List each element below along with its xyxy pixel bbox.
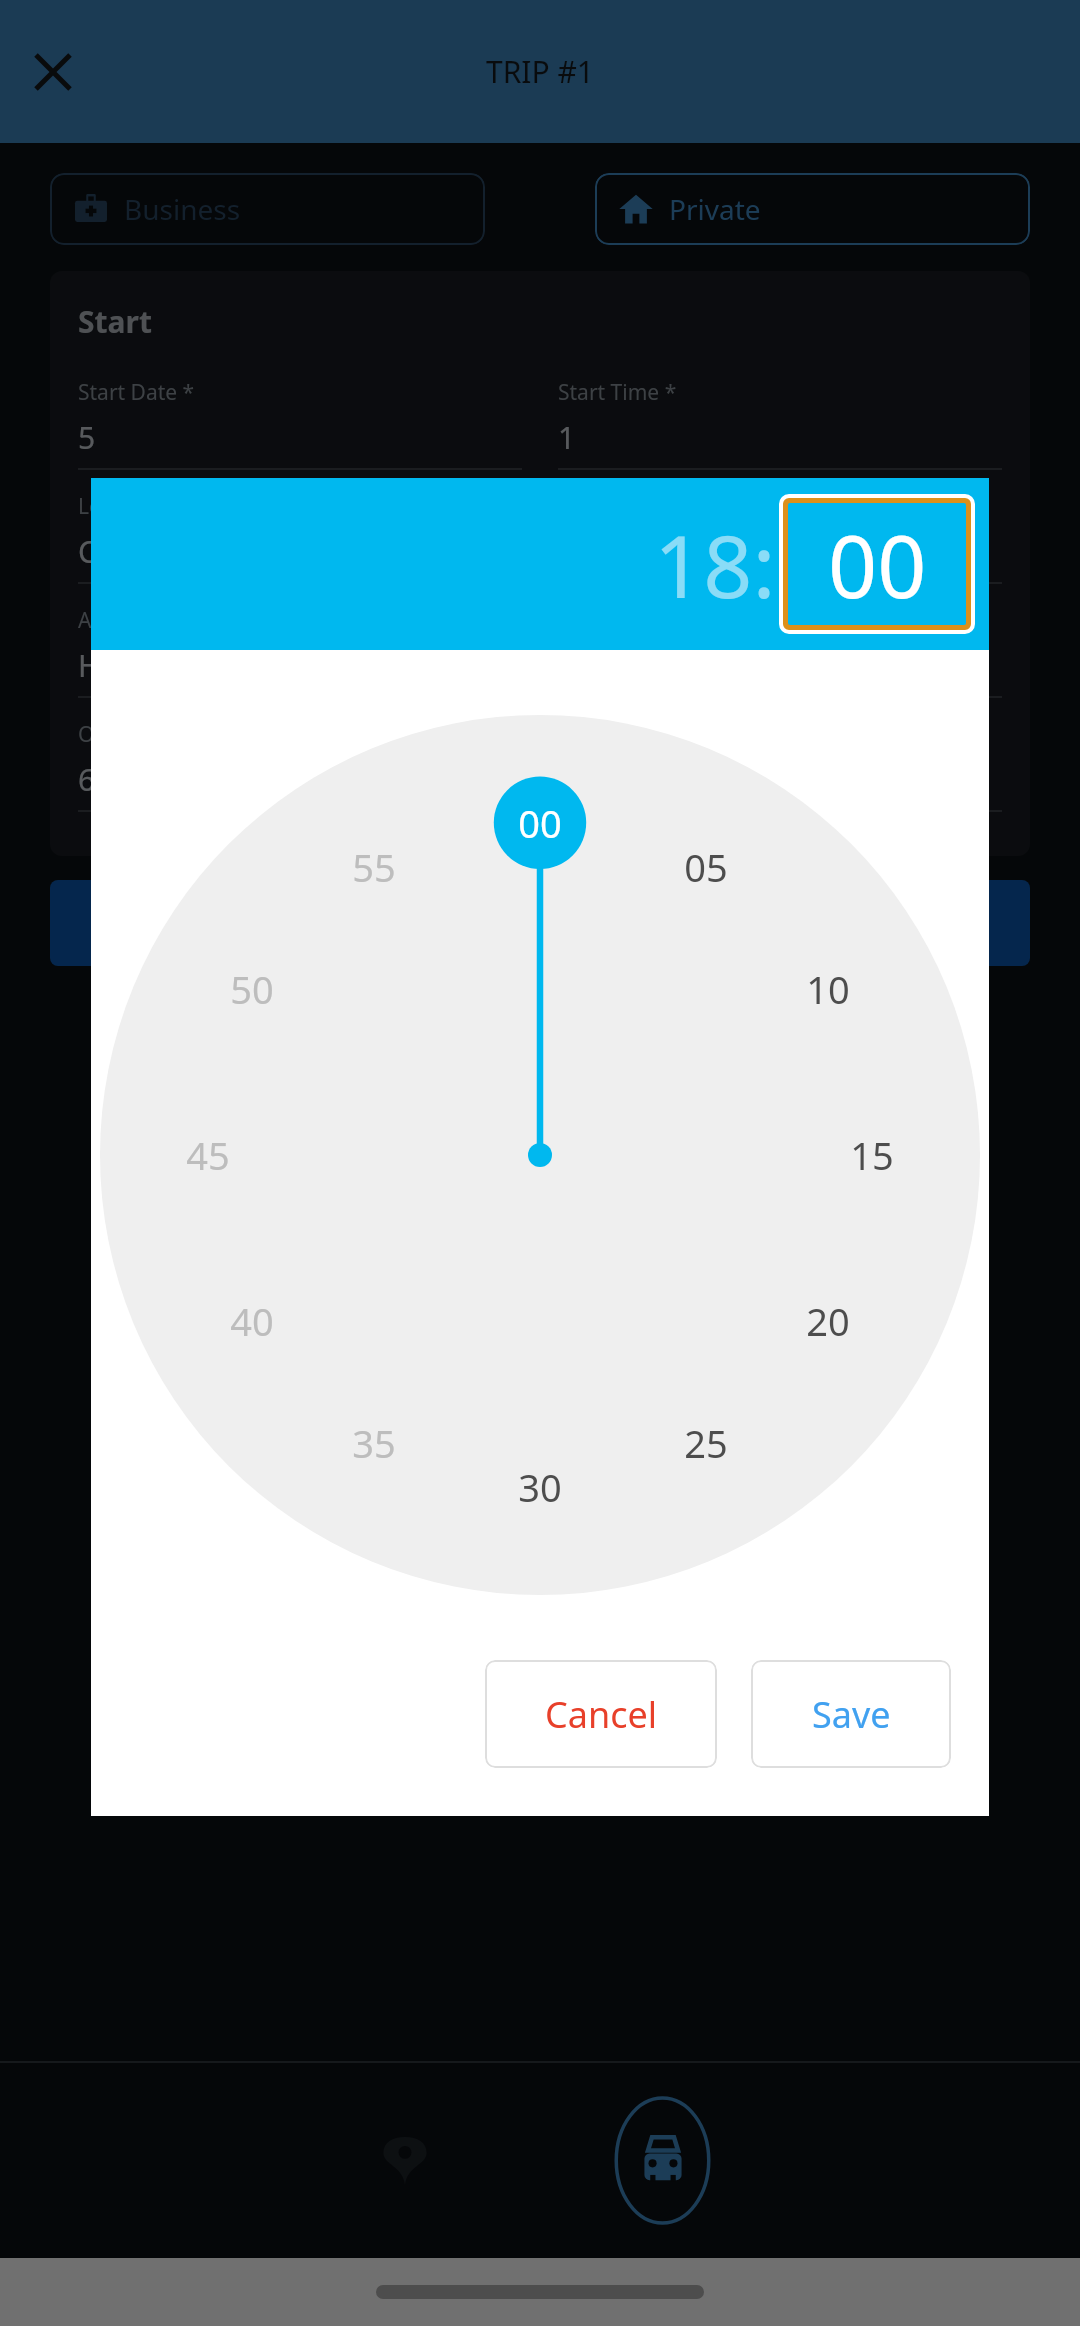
button[interactable]: 00 (501, 784, 579, 862)
staticText: Address (78, 606, 158, 635)
button[interactable]: 05 (667, 828, 745, 906)
button[interactable]: 25 (667, 1404, 745, 1482)
staticText: Start Date * (78, 378, 195, 407)
button[interactable]: 00 (782, 497, 972, 631)
button[interactable]: Cancel (485, 1660, 717, 1768)
staticText: H (78, 645, 101, 686)
button[interactable]: Private (595, 173, 1030, 245)
staticText: 55 (352, 841, 396, 893)
staticText: Business (124, 190, 241, 228)
staticText: C (78, 531, 97, 572)
button[interactable]: 15 (833, 1116, 911, 1194)
button[interactable]: 10 (789, 950, 867, 1028)
button[interactable]: 30 (501, 1448, 579, 1526)
button[interactable]: Trips (600, 2098, 725, 2223)
staticText: TRIP #1 (486, 51, 594, 92)
button[interactable]: 18: (654, 506, 776, 623)
staticText: 30 (518, 1461, 562, 1513)
button[interactable] (50, 880, 1030, 966)
button[interactable]: 20 (789, 1282, 867, 1360)
button[interactable]: 45 (169, 1116, 247, 1194)
button[interactable]: 50 (213, 950, 291, 1028)
staticText: 6 (78, 759, 96, 800)
staticText: 00 (828, 506, 927, 623)
staticText: 05 (684, 841, 728, 893)
staticText: Save (812, 1690, 891, 1739)
staticText: 50 (230, 963, 274, 1015)
button[interactable]: 40 (213, 1282, 291, 1360)
button[interactable]: 55 (335, 828, 413, 906)
staticText: Private (669, 190, 761, 228)
staticText: 1 (558, 417, 576, 458)
staticText: Location (78, 492, 163, 521)
staticText: 00 (518, 797, 562, 849)
staticText: 45 (186, 1129, 230, 1181)
staticText: 40 (230, 1295, 274, 1347)
staticText: 35 (352, 1417, 396, 1469)
staticText: 20 (806, 1295, 850, 1347)
staticText: 25 (684, 1417, 728, 1469)
button[interactable]: Close (18, 37, 88, 107)
button[interactable]: 35 (335, 1404, 413, 1482)
button[interactable]: Save (751, 1660, 951, 1768)
button[interactable]: Business (50, 173, 485, 245)
staticText: 5 (78, 417, 96, 458)
staticText: Start (78, 301, 152, 342)
staticText: Start Time * (558, 378, 677, 407)
staticText: 10 (806, 963, 850, 1015)
staticText: Odometer (78, 720, 180, 749)
staticText: 15 (850, 1129, 894, 1181)
staticText: Cancel (545, 1690, 658, 1739)
